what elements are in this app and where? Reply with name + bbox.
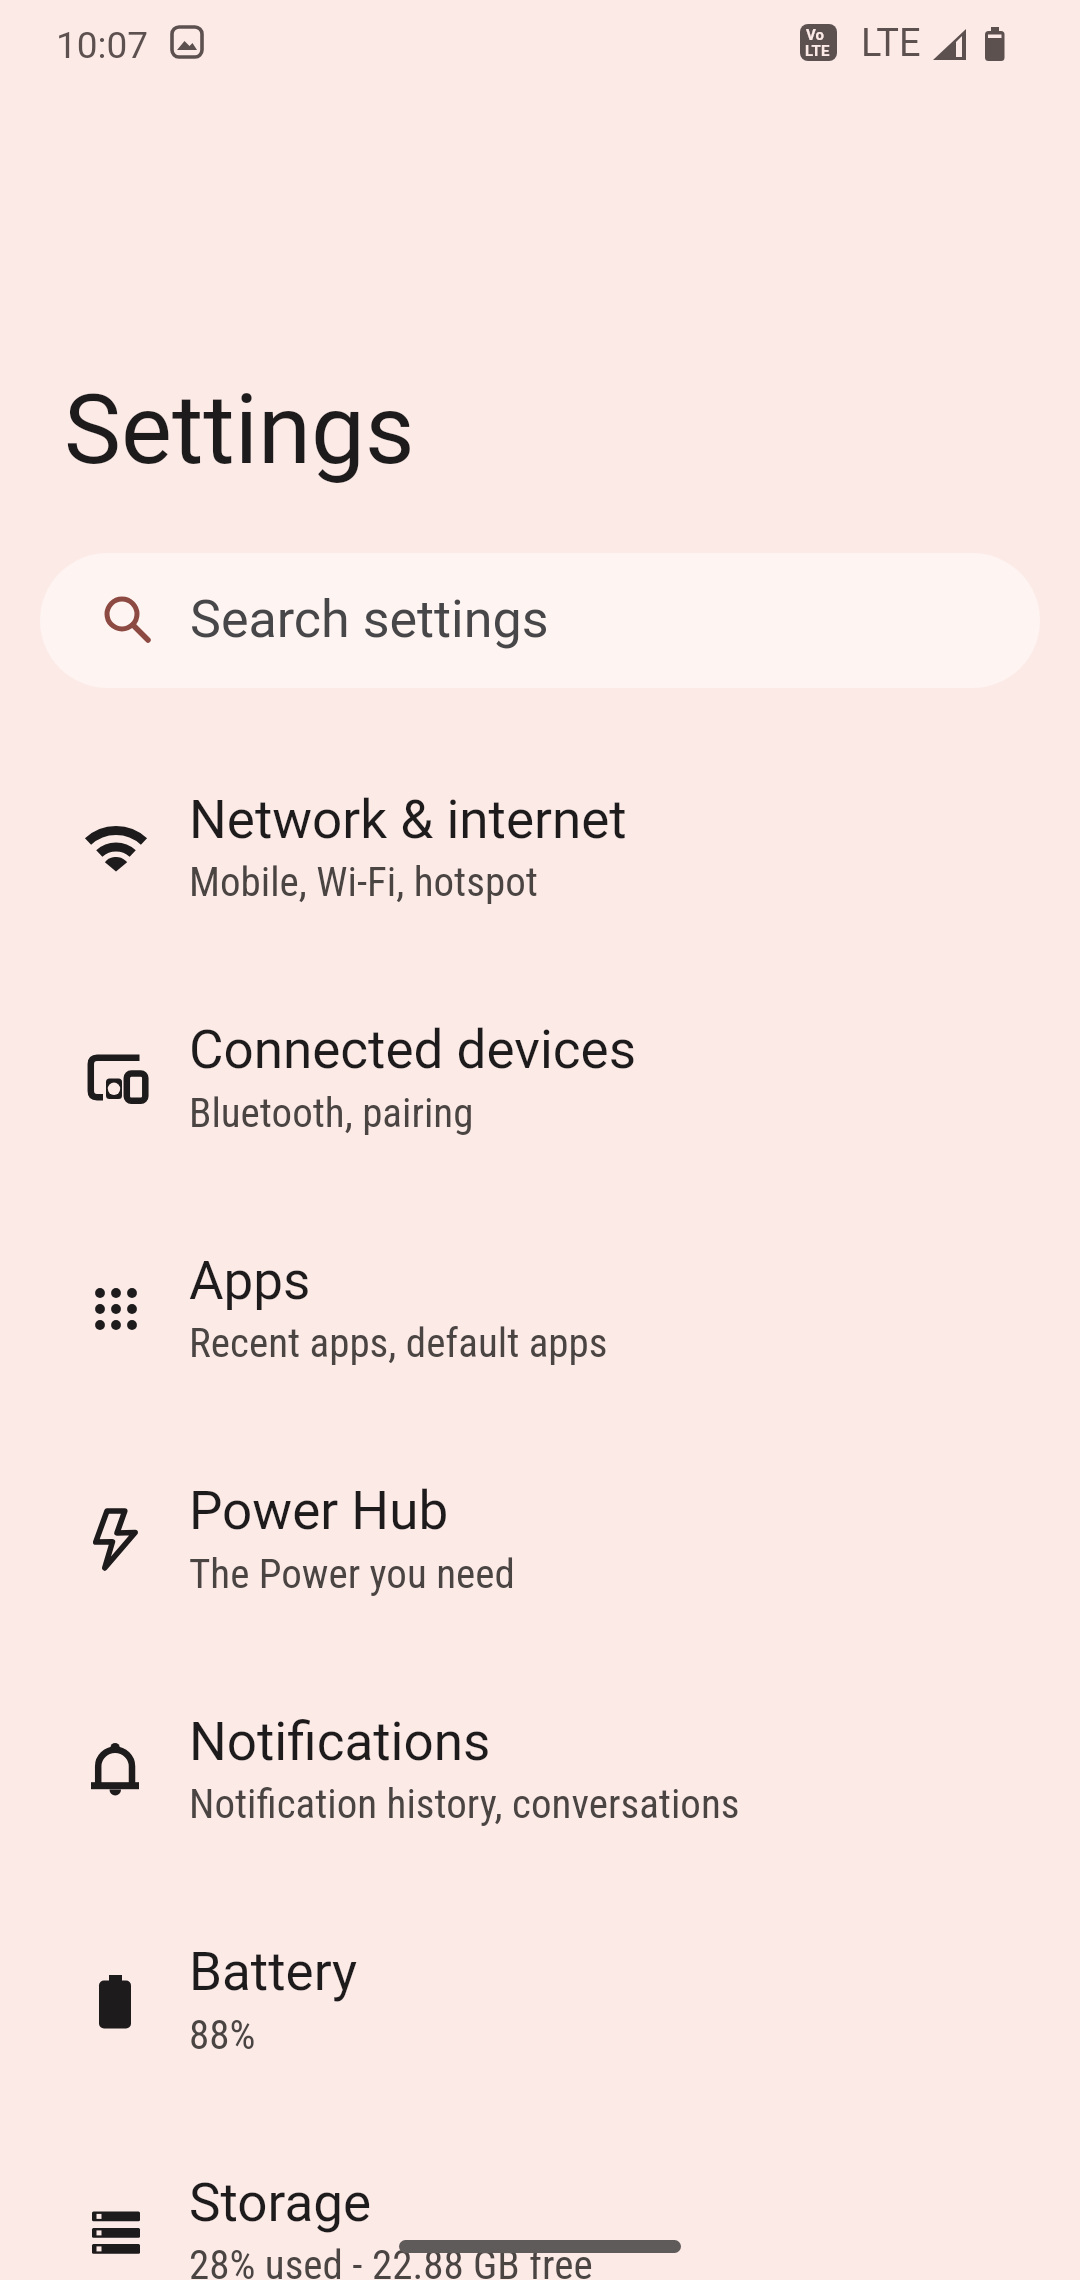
staticText: Power Hub xyxy=(189,1480,449,1542)
staticText: Network & internet xyxy=(189,789,627,851)
staticText: Notifications xyxy=(189,1711,491,1773)
staticText: Vo xyxy=(806,26,824,44)
button[interactable] xyxy=(0,1194,1080,1424)
staticText: 28% used - 22.88 GB free xyxy=(189,2241,593,2280)
staticText: 10:07 xyxy=(56,24,149,67)
staticText: The Power you need xyxy=(189,1550,515,1598)
staticText: Connected devices xyxy=(189,1019,637,1081)
staticText: Recent apps, default apps xyxy=(189,1319,608,1367)
staticText: Apps xyxy=(189,1250,311,1312)
staticText: 88% xyxy=(189,2011,256,2059)
staticText: LTE xyxy=(861,21,921,66)
staticText: Battery xyxy=(189,1941,358,2003)
staticText: LTE xyxy=(805,42,830,60)
button[interactable] xyxy=(0,1425,1080,1655)
staticText: Mobile, Wi-Fi, hotspot xyxy=(189,858,538,906)
button[interactable] xyxy=(0,733,1080,963)
button[interactable] xyxy=(0,1886,1080,2116)
staticText: Settings xyxy=(64,374,415,487)
button[interactable] xyxy=(0,964,1080,1194)
staticText: Storage xyxy=(189,2172,372,2234)
staticText: Search settings xyxy=(190,589,549,650)
button[interactable] xyxy=(0,2116,1080,2280)
staticText: Notification history, conversations xyxy=(189,1780,740,1828)
staticText: Bluetooth, pairing xyxy=(189,1089,474,1137)
button[interactable] xyxy=(0,1655,1080,1885)
button[interactable] xyxy=(40,553,1040,688)
